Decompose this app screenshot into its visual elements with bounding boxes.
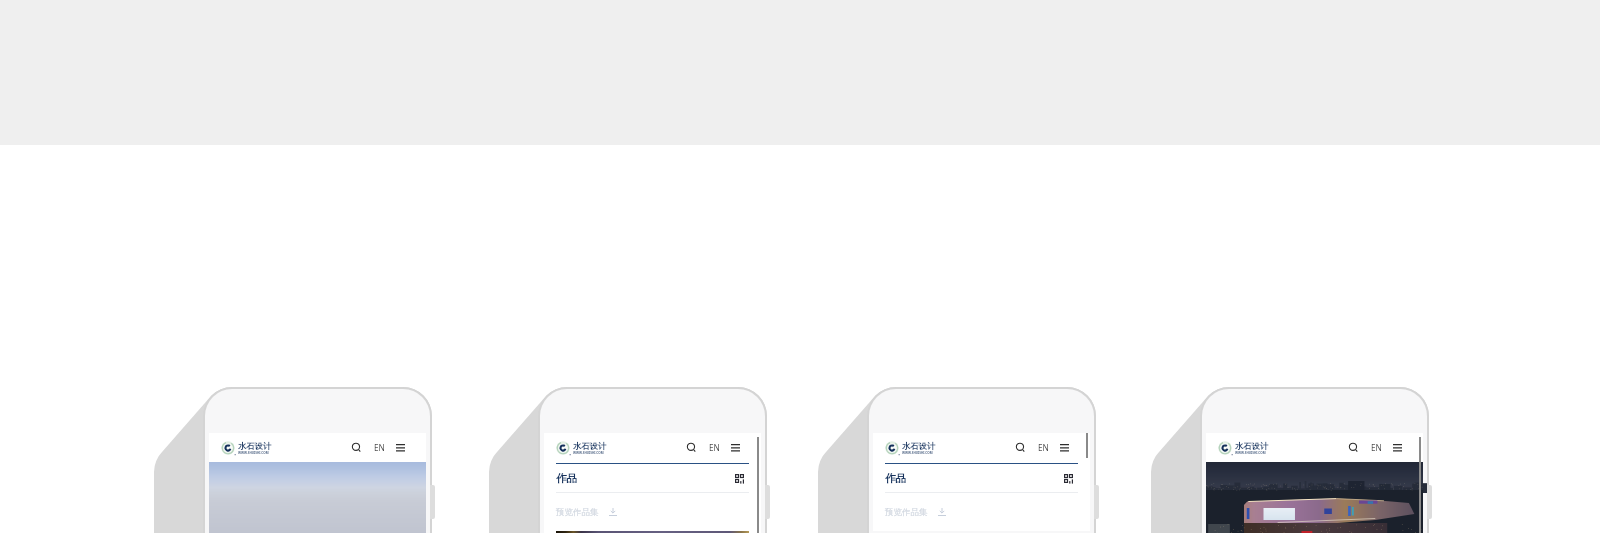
button[interactable]: Search xyxy=(1016,443,1025,452)
staticText: EN xyxy=(709,442,720,453)
staticText: 水石设计 xyxy=(573,441,607,451)
button[interactable]: Search xyxy=(1349,443,1358,452)
staticText: 水石设计 xyxy=(1235,441,1269,451)
button[interactable]: 作品 list screen xyxy=(867,387,1096,533)
staticText: 水石设计 xyxy=(238,441,272,451)
button[interactable]: Search xyxy=(687,443,696,452)
staticText: EN xyxy=(1038,442,1049,453)
button[interactable]: EN xyxy=(1371,442,1382,453)
staticText: EN xyxy=(1371,442,1382,453)
staticText: EN xyxy=(374,442,385,453)
button[interactable]: EN xyxy=(374,442,385,453)
staticText: WWW.SHUISHI.COM xyxy=(902,451,933,455)
staticText: WWW.SHUISHI.COM xyxy=(573,451,604,455)
button[interactable]: Grid view xyxy=(735,474,744,483)
button[interactable]: Menu xyxy=(731,444,740,451)
button[interactable]: Search xyxy=(352,443,361,452)
button[interactable]: Download xyxy=(938,508,946,516)
button[interactable]: Download xyxy=(609,508,617,516)
button[interactable]: Project detail screen xyxy=(1200,387,1429,533)
button[interactable]: Grid view xyxy=(1064,474,1073,483)
button[interactable]: EN xyxy=(1038,442,1049,453)
button[interactable]: Menu xyxy=(1060,444,1069,451)
button[interactable]: Menu xyxy=(1393,444,1402,451)
staticText: 水石设计 xyxy=(902,441,936,451)
button[interactable]: EN xyxy=(709,442,720,453)
staticText: 预览作品集 xyxy=(885,507,928,518)
button[interactable]: Menu xyxy=(396,444,405,451)
button[interactable]: 作品 projects screen xyxy=(538,387,767,533)
staticText: WWW.SHUISHI.COM xyxy=(238,451,269,455)
staticText: 作品 xyxy=(885,472,907,485)
staticText: 作品 xyxy=(556,472,578,485)
staticText: 预览作品集 xyxy=(556,507,599,518)
button[interactable]: 水石设计 home screen xyxy=(203,387,432,533)
staticText: WWW.SHUISHI.COM xyxy=(1235,451,1266,455)
